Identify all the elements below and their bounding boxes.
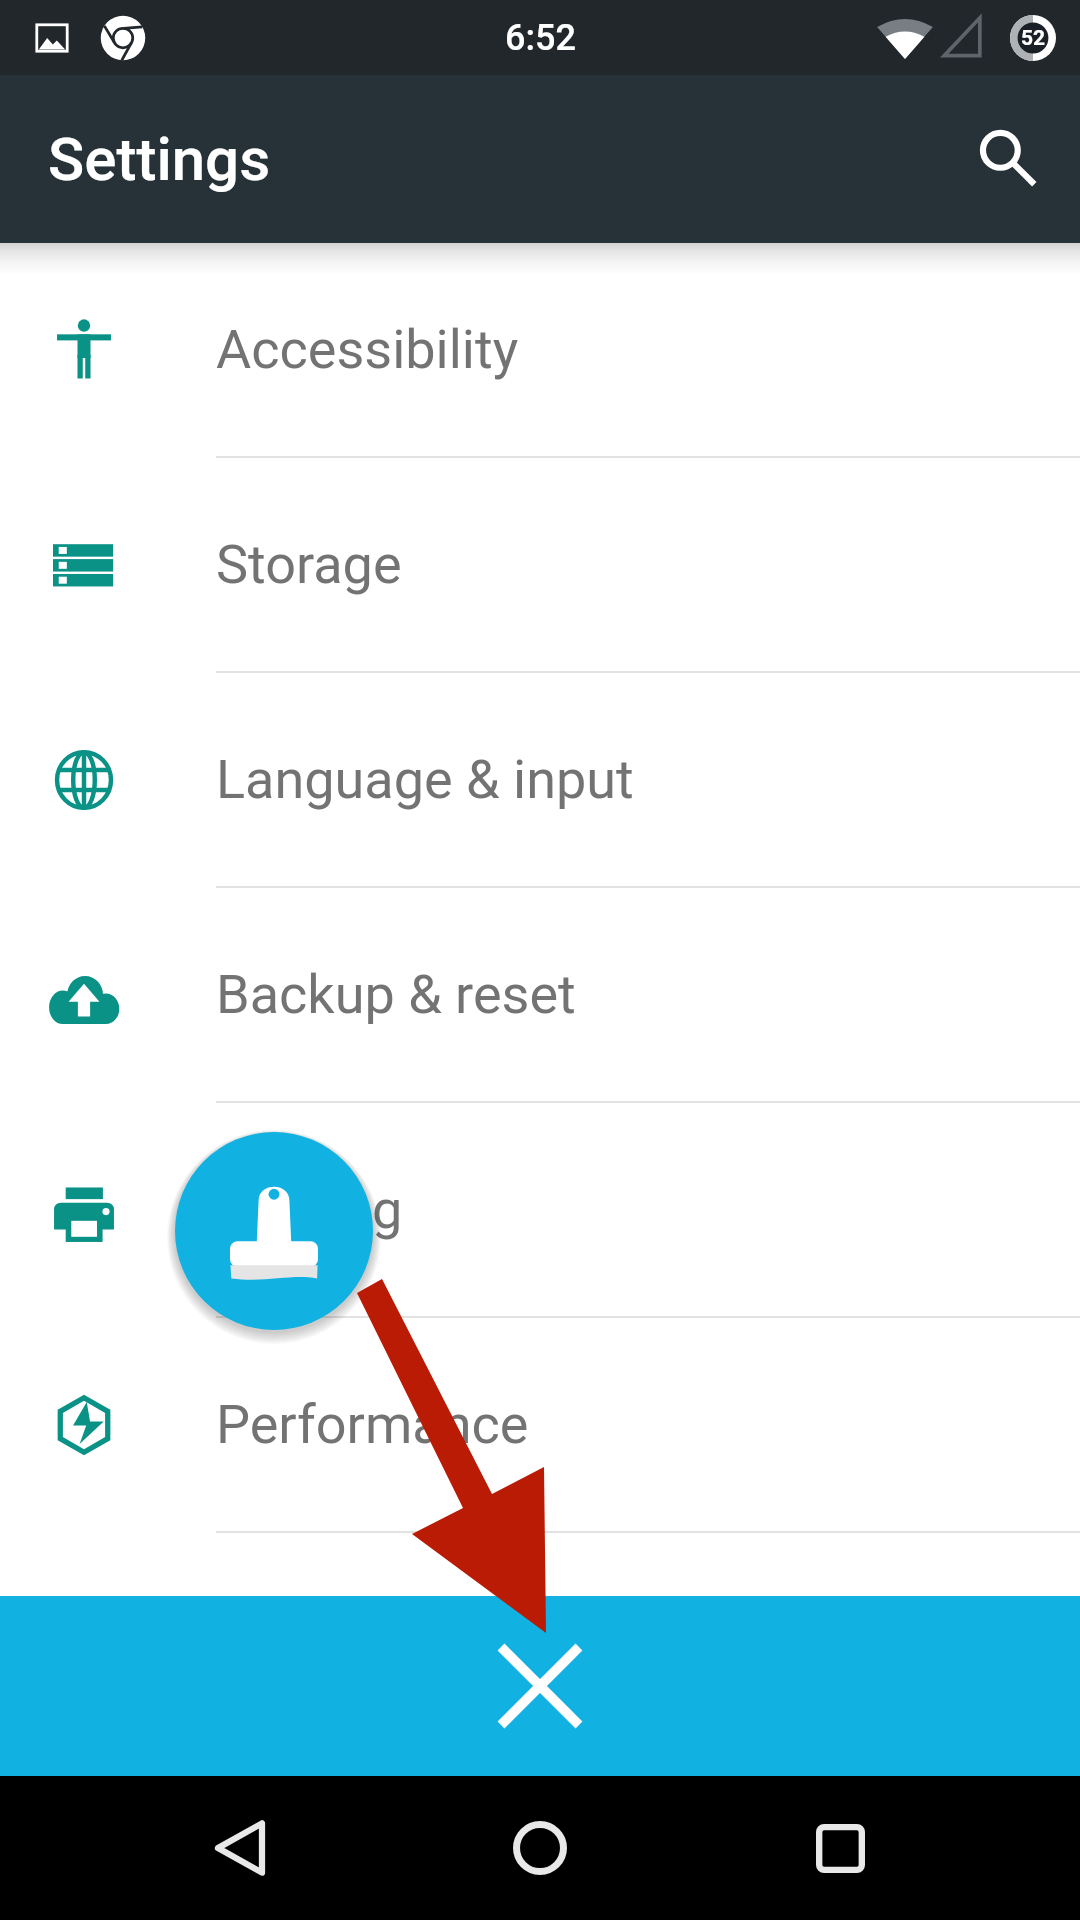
button[interactable]: Accessibility [0,243,1080,458]
staticText: Storage [216,533,402,596]
staticText: Backup & reset [216,963,576,1026]
staticText: Language & input [216,748,634,811]
staticText: Settings [48,124,271,194]
staticText: Performance [216,1393,529,1456]
button[interactable]: Search [954,104,1064,214]
button[interactable]: Performance [0,1318,1080,1533]
button[interactable]: Recent apps [750,1776,930,1920]
button[interactable]: Backup & reset [0,888,1080,1103]
button[interactable]: Close [0,1596,1080,1776]
staticText: 6:52 [505,17,576,59]
staticText: 52 [1021,26,1046,51]
staticText: Printing [216,1178,403,1241]
staticText: Accessibility [216,318,519,381]
button[interactable]: Storage [0,458,1080,673]
button[interactable]: Home [450,1776,630,1920]
button[interactable]: Printing [0,1103,1080,1318]
button[interactable]: Language & input [0,673,1080,888]
button[interactable]: Brush tool [175,1132,373,1330]
button[interactable]: Back [150,1776,330,1920]
